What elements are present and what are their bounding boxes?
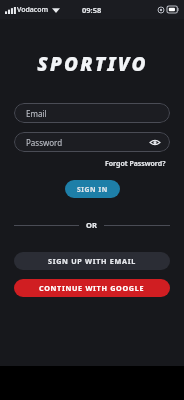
staticText: Password xyxy=(26,137,63,148)
button[interactable]: Show password xyxy=(149,136,161,148)
button[interactable]: Email xyxy=(14,103,170,123)
staticText: CONTINUE WITH GOOGLE xyxy=(39,283,145,293)
staticText: SIGN UP WITH EMAIL xyxy=(48,256,136,266)
button[interactable]: SIGN UP WITH EMAIL xyxy=(14,252,170,270)
staticText: OR xyxy=(86,220,97,230)
staticText: SIGN IN xyxy=(77,185,108,194)
staticText: Forgot Password? xyxy=(105,159,166,169)
button[interactable]: Forgot Password? xyxy=(103,158,168,170)
staticText: 09:58 xyxy=(82,5,102,15)
button[interactable]: SIGN IN xyxy=(65,180,120,198)
staticText: Email xyxy=(26,108,47,119)
staticText: SPORTIVO xyxy=(37,51,148,77)
staticText: Vodacom xyxy=(17,5,49,15)
button[interactable]: CONTINUE WITH GOOGLE xyxy=(14,279,170,297)
button[interactable]: Password xyxy=(14,132,170,152)
